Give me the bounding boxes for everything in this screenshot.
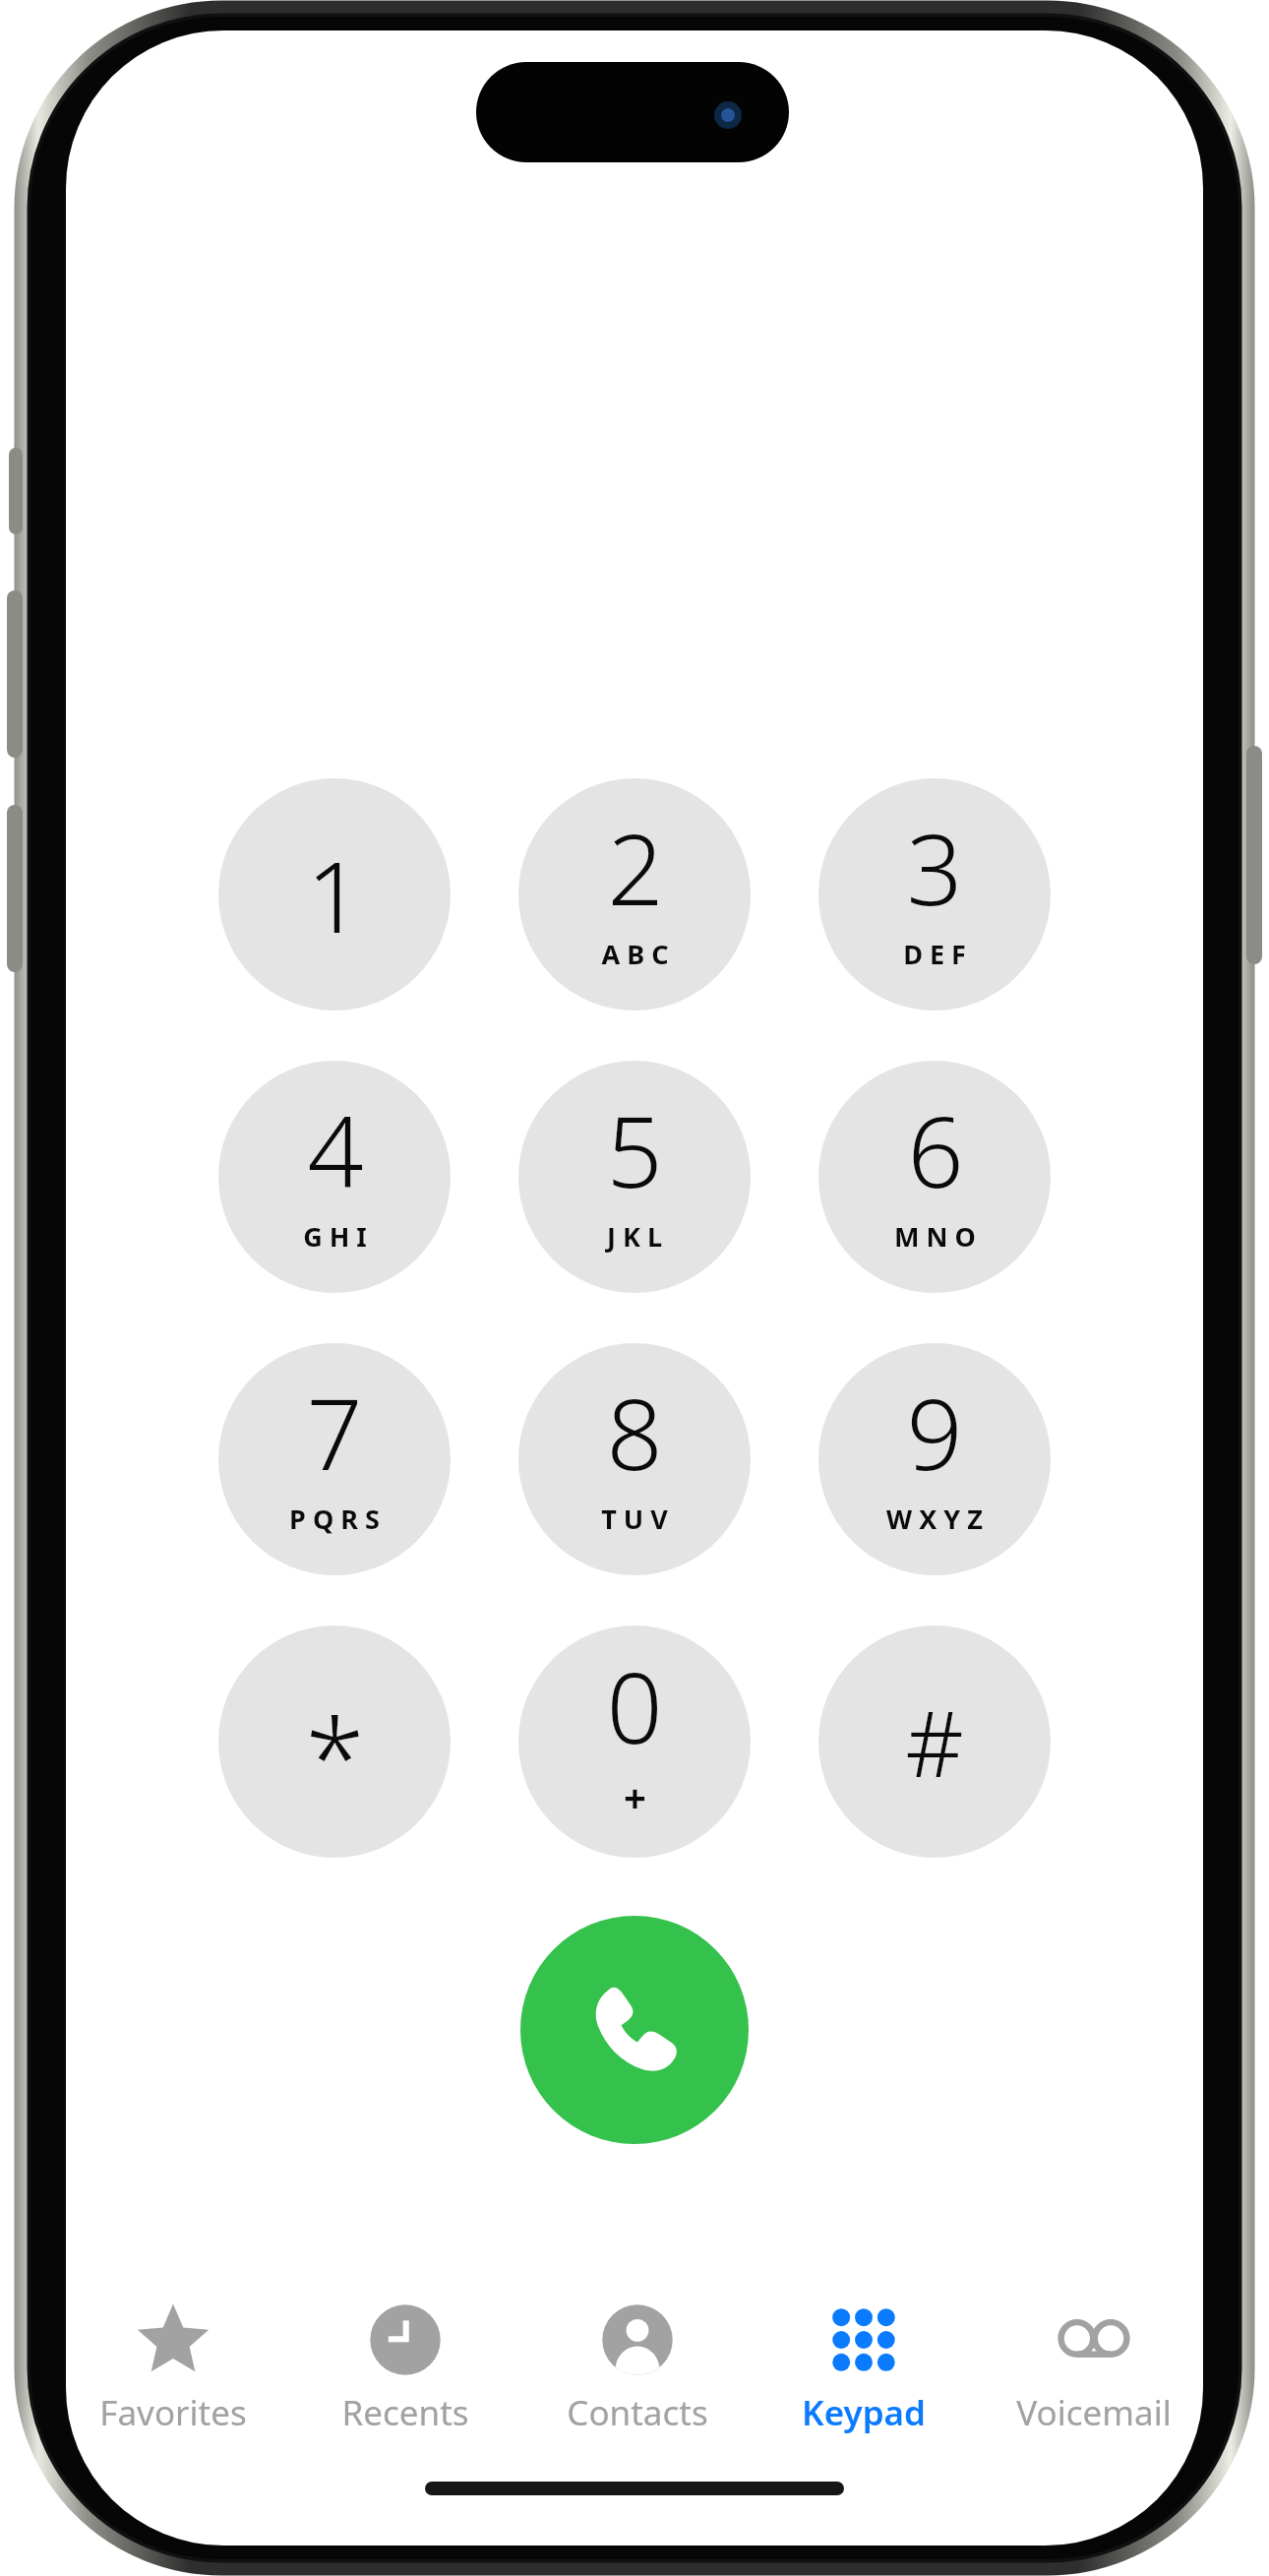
button[interactable]: 3 — [818, 778, 1051, 1011]
staticText: M N O — [894, 1218, 976, 1255]
button[interactable]: 6 — [818, 1061, 1051, 1293]
button[interactable]: Voicemail — [979, 2279, 1209, 2456]
staticText: G H I — [303, 1218, 367, 1255]
button[interactable]: Favorites — [58, 2279, 288, 2456]
staticText: 3 — [906, 800, 963, 934]
button[interactable]: 8 — [518, 1343, 751, 1575]
staticText: + — [624, 1770, 646, 1823]
staticText: D E F — [903, 936, 966, 972]
button[interactable]: Recents — [290, 2279, 520, 2456]
staticText: 8 — [606, 1365, 663, 1499]
staticText: # — [905, 1681, 964, 1804]
button[interactable]: 4 — [218, 1061, 451, 1293]
button[interactable]: # — [818, 1625, 1051, 1858]
staticText: 2 — [607, 800, 664, 934]
staticText: 5 — [606, 1082, 663, 1216]
staticText: A B C — [601, 936, 669, 972]
staticText: T U V — [601, 1501, 668, 1537]
button[interactable]: * — [218, 1625, 451, 1858]
staticText: 1 — [306, 828, 363, 961]
button[interactable]: 7 — [218, 1343, 451, 1575]
staticText: 9 — [906, 1365, 963, 1499]
staticText: 4 — [307, 1082, 364, 1216]
button[interactable]: 9 — [818, 1343, 1051, 1575]
staticText: Contacts — [567, 2389, 708, 2436]
staticText: Voicemail — [1016, 2389, 1172, 2436]
staticText: W X Y Z — [886, 1501, 983, 1537]
staticText: * — [305, 1682, 365, 1829]
button[interactable]: Call — [520, 1916, 749, 2144]
button[interactable]: Contacts — [522, 2279, 753, 2456]
button[interactable]: 0 — [518, 1625, 751, 1858]
staticText: Recents — [341, 2389, 469, 2436]
staticText: 0 — [606, 1638, 663, 1772]
staticText: Favorites — [99, 2389, 247, 2436]
button[interactable]: 5 — [518, 1061, 751, 1293]
staticText: 6 — [907, 1082, 964, 1216]
button[interactable]: Keypad — [749, 2279, 979, 2456]
staticText: 7 — [306, 1365, 363, 1499]
button[interactable]: 1 — [218, 778, 451, 1011]
staticText: J K L — [607, 1218, 662, 1255]
button[interactable]: 2 — [518, 778, 751, 1011]
staticText: P Q R S — [289, 1501, 380, 1537]
staticText: Keypad — [802, 2389, 926, 2436]
